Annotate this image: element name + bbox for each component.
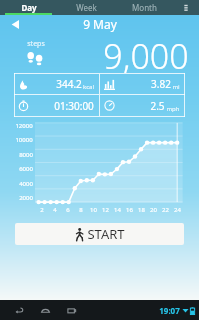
staticText: 19:07 [159, 305, 180, 316]
staticText: 3.82 [151, 77, 171, 91]
button[interactable]: Back [6, 300, 32, 320]
staticText: 18 [138, 206, 145, 214]
staticText: Week [76, 2, 97, 13]
button[interactable]: Day [0, 0, 57, 15]
staticText: 10 [90, 206, 97, 214]
button[interactable]: Previous day [0, 15, 30, 33]
staticText: 12000 [15, 122, 33, 130]
button[interactable]: Month [115, 0, 173, 15]
button[interactable]: 3.82 [100, 74, 185, 94]
button[interactable]: Recent apps [58, 300, 84, 320]
button[interactable]: START [15, 223, 184, 245]
staticText: mi [172, 83, 180, 91]
staticText: 24 [174, 206, 181, 214]
staticText: 6000 [19, 165, 33, 173]
staticText: 10000 [15, 136, 33, 144]
staticText: mph [166, 105, 180, 113]
staticText: 344.2 [56, 77, 82, 91]
staticText: 12 [102, 206, 109, 214]
staticText: 14 [114, 206, 121, 214]
staticText: 9,000 [103, 33, 189, 73]
button[interactable]: Home [32, 300, 58, 320]
staticText: 8000 [19, 151, 33, 159]
staticText: 9 May [83, 16, 117, 32]
staticText: Day [21, 2, 37, 13]
staticText: 22 [162, 206, 169, 214]
staticText: 01:30:00 [54, 99, 94, 113]
staticText: 2.5 [150, 99, 165, 113]
staticText: 4 [53, 206, 57, 214]
staticText: 2000 [19, 194, 33, 202]
button[interactable]: Week [57, 0, 115, 15]
staticText: steps [27, 39, 45, 49]
staticText: 20 [150, 206, 157, 214]
staticText: 2 [40, 206, 44, 214]
button[interactable]: More options [173, 0, 199, 15]
button[interactable]: 344.2 [14, 74, 99, 94]
staticText: 8 [79, 206, 83, 214]
staticText: 6 [66, 206, 70, 214]
button[interactable]: 2.5 [100, 95, 185, 116]
staticText: 4000 [19, 180, 33, 188]
staticText: Month [132, 2, 157, 13]
staticText: START [87, 225, 125, 243]
staticText: kcal [83, 83, 94, 91]
button[interactable]: 01:30:00 [14, 95, 99, 116]
staticText: 16 [126, 206, 133, 214]
